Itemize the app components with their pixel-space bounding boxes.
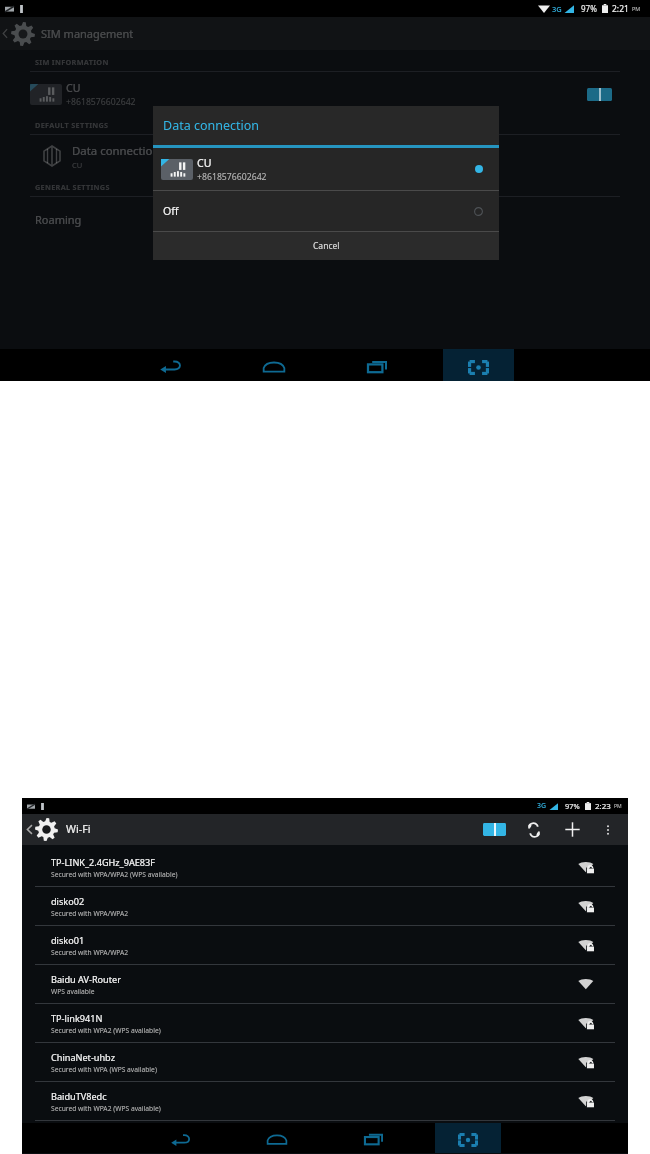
staticText: Secured with WPA/WPA2 (WPS available) [51, 870, 178, 879]
staticText: Data connection [72, 143, 160, 159]
staticText: BaiduTV8edc [51, 1090, 107, 1102]
staticText: Secured with WPA/WPA2 [51, 948, 129, 957]
staticText: ChinaNet-uhbz [51, 1051, 115, 1063]
staticText: SIM management [41, 26, 134, 41]
button[interactable]: More options [597, 814, 618, 845]
staticText: TP-LINK_2.4GHz_9AE83F [51, 856, 155, 868]
button[interactable]: Screenshot [435, 1123, 501, 1153]
button[interactable]: Baidu AV-Router [22, 965, 628, 1004]
staticText: PM [614, 803, 622, 810]
staticText: CU [66, 81, 81, 95]
button[interactable]: disko01 [22, 926, 628, 965]
staticText: CU [197, 156, 212, 170]
staticText: +8618576602642 [66, 96, 136, 108]
staticText: PM [632, 5, 641, 12]
staticText: 2:23 [595, 801, 611, 812]
button[interactable]: Scan [522, 814, 546, 845]
button[interactable]: BaiduTV8edc [22, 1082, 628, 1121]
button[interactable]: TP-link941N [22, 1004, 628, 1043]
button[interactable]: Home [262, 357, 286, 375]
staticText: Secured with WPA (WPS available) [51, 1065, 157, 1074]
button[interactable]: TP-LINK_2.4GHz_9AE83F [22, 848, 628, 887]
button[interactable]: SIM on [587, 88, 612, 101]
staticText: 3G [552, 4, 562, 14]
button[interactable]: Screenshot [443, 349, 514, 381]
button[interactable]: Data connection [44, 136, 650, 176]
staticText: 97% [565, 801, 580, 811]
staticText: GENERAL SETTINGS [35, 182, 110, 192]
staticText: Secured with WPA2 (WPS available) [51, 1026, 161, 1035]
button[interactable]: CU [161, 148, 483, 190]
staticText: Baidu AV-Router [51, 973, 121, 985]
staticText: Secured with WPA/WPA2 [51, 909, 129, 918]
button[interactable]: Back [170, 1129, 192, 1148]
staticText: 97% [581, 3, 597, 14]
button[interactable]: disko02 [22, 887, 628, 926]
button[interactable]: Roaming [35, 199, 650, 239]
staticText: DEFAULT SETTINGS [35, 120, 109, 130]
button[interactable]: Wi-Fi on [483, 823, 506, 836]
button[interactable]: CU [30, 74, 612, 115]
staticText: CU [72, 160, 83, 170]
staticText: Secured with WPA2 (WPS available) [51, 1104, 161, 1113]
staticText: Roaming [35, 212, 82, 227]
staticText: Wi-Fi [66, 822, 91, 837]
button[interactable]: Off [163, 191, 483, 231]
staticText: Data connection [163, 117, 260, 134]
button[interactable]: Back [159, 355, 183, 375]
button[interactable]: Recents [362, 1130, 384, 1147]
button[interactable]: Recents [365, 357, 389, 375]
staticText: +8618576602642 [197, 171, 267, 183]
staticText: 3G [537, 801, 547, 811]
button[interactable]: Cancel [153, 232, 499, 260]
button[interactable]: Up [0, 17, 650, 50]
staticText: disko02 [51, 895, 85, 907]
button[interactable]: Add network [560, 814, 584, 845]
button[interactable]: ChinaNet-uhbz [22, 1043, 628, 1082]
button[interactable]: Home [266, 1130, 288, 1147]
staticText: TP-link941N [51, 1012, 103, 1024]
staticText: Off [163, 204, 179, 218]
staticText: 2:21 [612, 3, 629, 15]
staticText: SIM INFORMATION [35, 57, 109, 67]
staticText: WPS available [51, 987, 95, 996]
staticText: Cancel [313, 240, 340, 252]
staticText: disko01 [51, 934, 85, 946]
